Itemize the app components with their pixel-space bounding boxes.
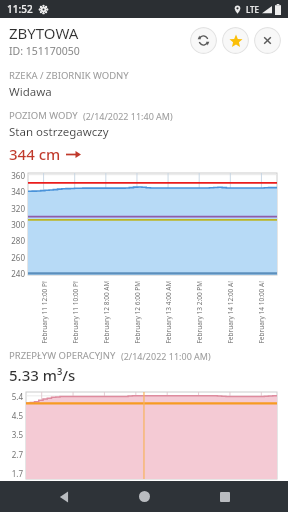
staticText: 11:52 [7, 2, 33, 16]
staticText: 344 cm [9, 144, 61, 164]
staticText: February 12 6:00 PM [132, 281, 141, 343]
staticText: February 11 10:00 PM [70, 281, 79, 343]
staticText: February 14 12:00 AM [225, 281, 234, 343]
staticText: 260 [11, 252, 25, 263]
button[interactable]: Add to favorites [222, 27, 249, 54]
staticText: 5.4 [11, 391, 23, 402]
staticText: (2/14/2022 11:00 AM) [121, 350, 211, 362]
staticText: February 13 4:00 AM [163, 281, 172, 343]
staticText: February 14 10:00 AM [256, 281, 265, 343]
staticText: 360 [11, 170, 25, 181]
staticText: POZIOM WODY [9, 109, 78, 122]
staticText: 340 [11, 186, 25, 197]
staticText: 3.5 [11, 429, 23, 440]
staticText: 5.33 m³/s [9, 365, 76, 385]
staticText: February 13 2:00 PM [194, 281, 203, 343]
button[interactable]: Refresh [190, 27, 217, 54]
staticText: 320 [11, 203, 25, 214]
button[interactable]: Recent apps [208, 481, 242, 512]
staticText: ID: 151170050 [9, 44, 80, 58]
staticText: RZEKA / ZBIORNIK WODNY [9, 69, 129, 82]
staticText: February 11 12:00 PM [39, 281, 48, 343]
button[interactable]: 344 cm [9, 144, 81, 164]
staticText: Stan ostrzegawczy [9, 124, 109, 140]
staticText: LTE [246, 4, 260, 15]
staticText: PRZEPŁYW OPERACYJNY [9, 349, 116, 362]
button[interactable]: Home [127, 481, 161, 512]
staticText: 280 [11, 235, 25, 246]
staticText: 2.7 [11, 449, 23, 460]
staticText: 1.7 [11, 468, 23, 479]
staticText: 300 [11, 219, 25, 230]
button[interactable]: Back [47, 481, 81, 512]
staticText: (2/14/2022 11:40 AM) [83, 110, 173, 122]
staticText: 4.5 [11, 410, 23, 421]
staticText: February 12 8:00 AM [101, 281, 110, 343]
button[interactable]: Close [254, 27, 281, 54]
staticText: Widawa [9, 84, 52, 100]
staticText: 240 [11, 268, 25, 279]
staticText: ZBYTOWA [9, 23, 79, 43]
